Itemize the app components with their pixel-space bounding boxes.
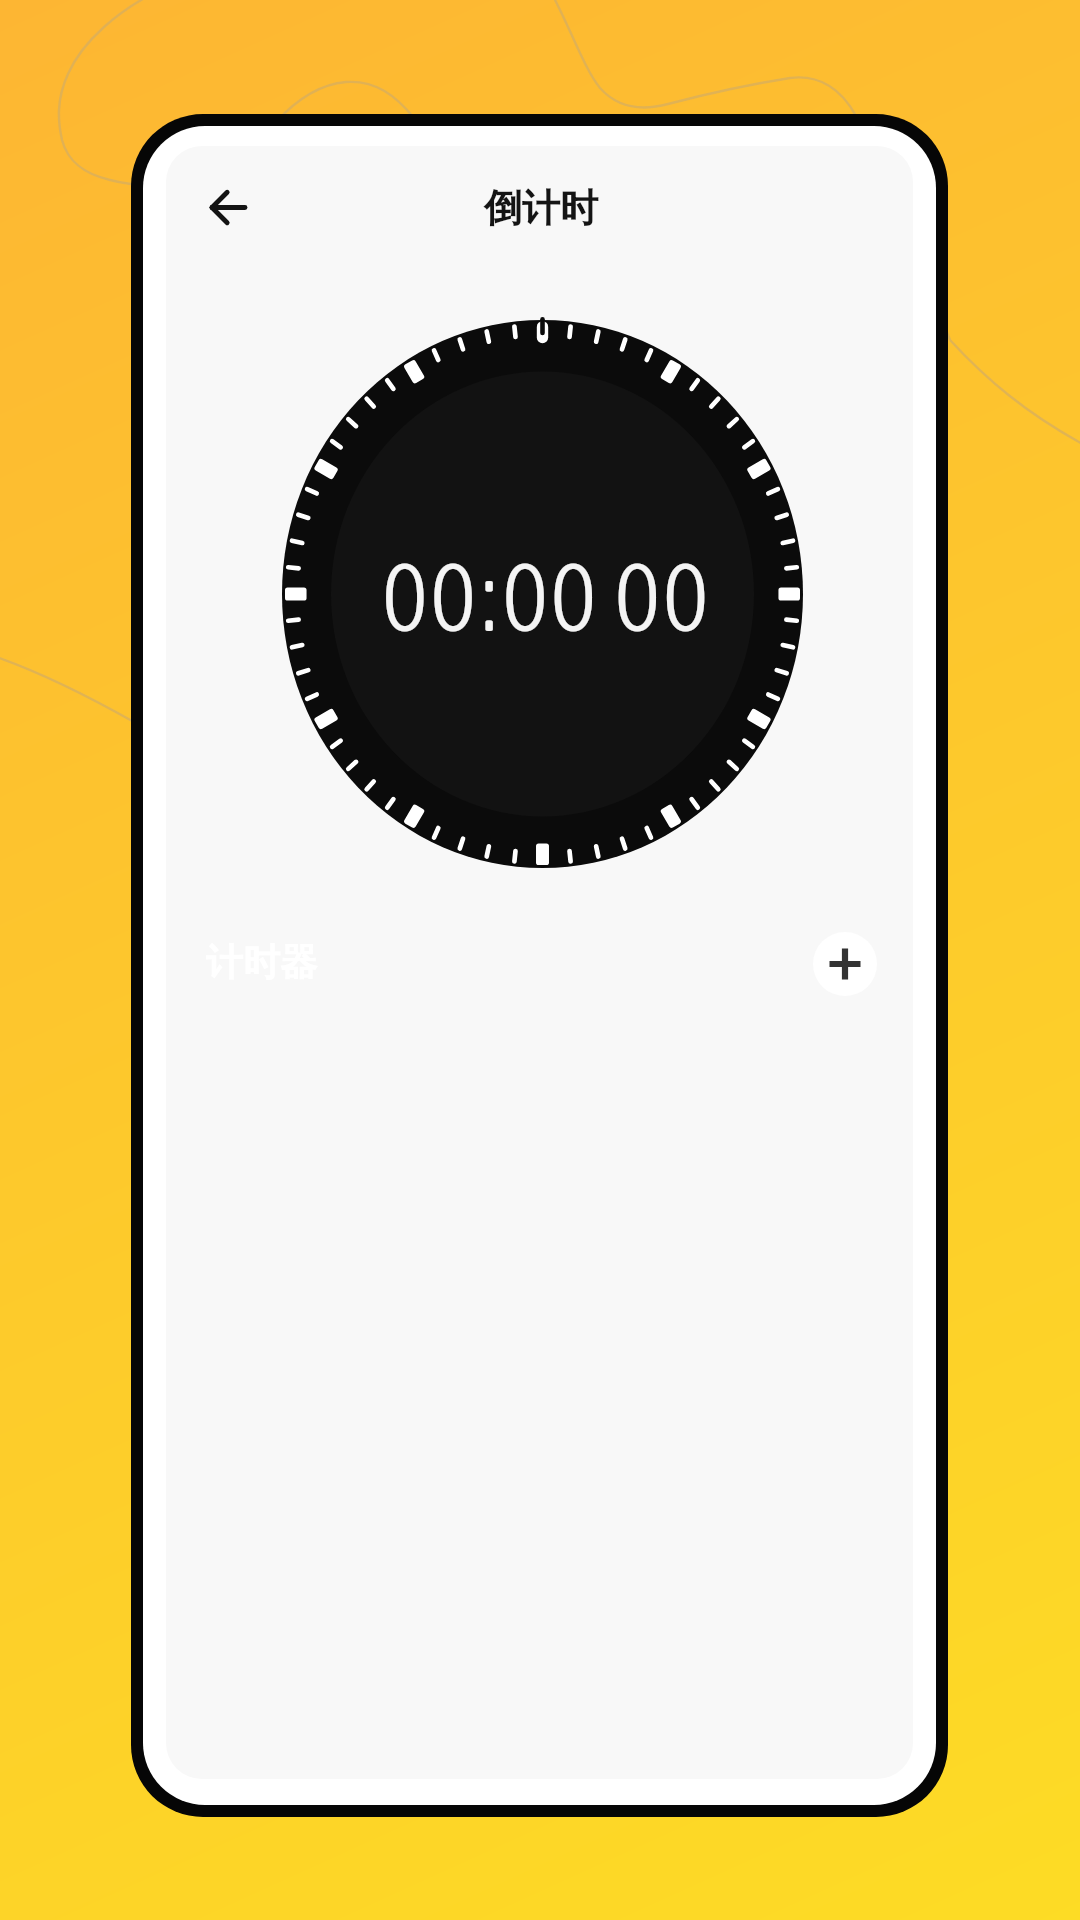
staticText: 00:00 00 xyxy=(382,540,711,651)
staticText: 计时器 xyxy=(206,939,317,986)
button[interactable]: Add timer xyxy=(813,932,877,996)
staticText: 倒计时 xyxy=(484,184,598,232)
button[interactable]: Back xyxy=(200,179,256,235)
